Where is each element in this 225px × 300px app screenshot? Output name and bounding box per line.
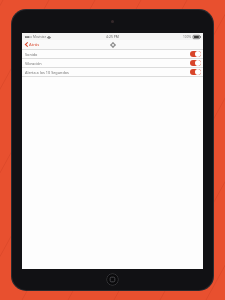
button[interactable]: Location: [109, 41, 116, 48]
button[interactable]: Vibración: [22, 59, 203, 67]
button[interactable]: Toggle on: [190, 51, 201, 57]
staticText: Vibración: [25, 61, 42, 66]
button[interactable]: Toggle on: [190, 60, 201, 66]
button[interactable]: Home: [106, 273, 119, 286]
staticText: Alerta a los 10 Segundos: [25, 70, 69, 75]
button[interactable]: Alerta a los 10 Segundos: [22, 68, 203, 76]
button[interactable]: Atrás: [22, 40, 43, 49]
button[interactable]: Toggle on: [190, 69, 201, 75]
staticText: 4:25 PM: [106, 34, 119, 39]
staticText: 100%: [183, 35, 192, 39]
staticText: Movistar: [33, 35, 46, 39]
button[interactable]: Sonido: [22, 50, 203, 58]
staticText: Sonido: [25, 52, 38, 57]
staticText: Atrás: [29, 42, 40, 48]
